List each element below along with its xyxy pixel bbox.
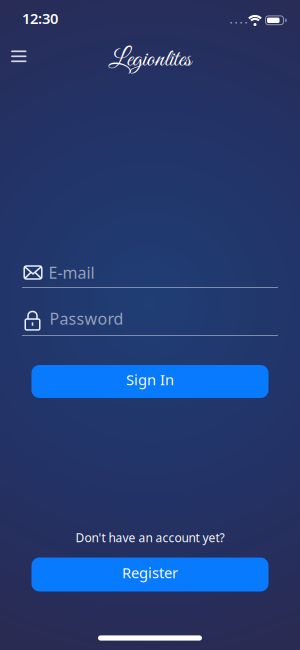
staticText: E-mail: [48, 262, 94, 283]
button[interactable]: [4, 41, 34, 71]
button[interactable]: E-mail: [20, 255, 280, 291]
staticText: Don't have an account yet?: [75, 529, 224, 545]
button[interactable]: Sign In: [31, 365, 268, 398]
staticText: Register: [122, 563, 178, 582]
staticText: 12:30: [22, 8, 58, 28]
staticText: Password: [49, 308, 123, 329]
button[interactable]: Password: [20, 300, 280, 340]
staticText: Legionlites: [108, 44, 191, 76]
button[interactable]: Register: [31, 557, 268, 591]
staticText: Sign In: [126, 370, 174, 389]
